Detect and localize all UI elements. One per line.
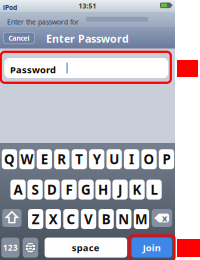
staticText: N [118, 210, 129, 228]
staticText: Y [93, 150, 101, 168]
staticText: 13:51 [78, 2, 96, 10]
staticText: M [135, 210, 148, 228]
button[interactable]: R [54, 149, 69, 169]
staticText: P [162, 150, 170, 168]
staticText: O [144, 150, 155, 168]
button[interactable]: Shift [2, 209, 22, 227]
button[interactable]: F [61, 180, 77, 200]
button[interactable]: D [44, 180, 60, 200]
staticText: L [151, 181, 158, 198]
staticText: D [47, 181, 57, 198]
button[interactable]: I [124, 149, 139, 169]
button[interactable]: Y [89, 149, 104, 169]
button[interactable]: S [27, 180, 43, 200]
button[interactable]: T [72, 149, 87, 169]
button[interactable]: K [129, 180, 145, 200]
staticText: Enter the password for [7, 17, 79, 26]
button[interactable]: Delete [152, 209, 172, 227]
staticText: F [65, 181, 72, 198]
button[interactable]: M [134, 209, 149, 229]
staticText: space [72, 241, 100, 254]
staticText: C [66, 210, 75, 228]
staticText: V [84, 210, 93, 228]
staticText: A [14, 181, 23, 198]
button[interactable]: Join [131, 238, 172, 258]
button[interactable]: 123 [1, 238, 19, 258]
staticText: W [20, 150, 33, 168]
button[interactable]: C [63, 209, 79, 229]
staticText: Z [32, 210, 40, 228]
button[interactable]: space [45, 238, 127, 258]
staticText: R [57, 150, 66, 168]
button[interactable]: A [10, 180, 26, 200]
staticText: J [118, 181, 122, 198]
staticText: Password [10, 63, 56, 76]
button[interactable]: L [146, 180, 162, 200]
button[interactable]: N [116, 209, 131, 229]
button[interactable]: Cancel [3, 32, 34, 44]
button[interactable]: E [37, 149, 52, 169]
button[interactable]: Z [28, 209, 43, 229]
staticText: X [49, 210, 58, 228]
staticText: T [75, 150, 83, 168]
button[interactable]: H [95, 180, 111, 200]
staticText: Q [4, 150, 15, 168]
staticText: Join [143, 241, 161, 254]
button[interactable]: G [78, 180, 94, 200]
button[interactable]: Switch keyboard [23, 238, 38, 258]
staticText: S [31, 181, 38, 198]
staticText: I [129, 150, 134, 168]
staticText: 123 [3, 242, 18, 253]
button[interactable]: V [81, 209, 96, 229]
button[interactable]: X [46, 209, 61, 229]
staticText: E [41, 150, 48, 168]
staticText: H [98, 181, 108, 198]
button[interactable]: P [159, 149, 174, 169]
staticText: Cancel [8, 34, 29, 42]
staticText: x [162, 212, 167, 224]
staticText: K [133, 181, 142, 198]
button[interactable]: W [19, 149, 34, 169]
button[interactable]: U [106, 149, 122, 169]
button[interactable]: Q [2, 149, 17, 169]
staticText: iPod [3, 3, 17, 12]
staticText: U [109, 150, 119, 168]
staticText: B [102, 210, 111, 228]
staticText: G [81, 181, 91, 198]
staticText: Enter Password [46, 31, 129, 46]
button[interactable]: O [141, 149, 157, 169]
button[interactable]: J [112, 180, 128, 200]
button[interactable]: B [98, 209, 114, 229]
